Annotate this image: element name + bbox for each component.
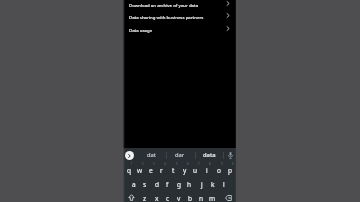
- staticText: 6: [187, 162, 189, 166]
- staticText: Data usage: [129, 27, 153, 33]
- button[interactable]: [125, 151, 134, 160]
- button[interactable]: r: [156, 163, 167, 177]
- button[interactable]: q: [123, 163, 134, 177]
- button[interactable]: [225, 195, 232, 201]
- button[interactable]: Data sharing with business partners: [123, 11, 236, 23]
- staticText: 9: [221, 162, 223, 166]
- staticText: o: [217, 166, 221, 175]
- staticText: i: [206, 166, 208, 175]
- staticText: m: [209, 194, 216, 202]
- staticText: q: [127, 166, 131, 175]
- staticText: 5: [176, 162, 178, 166]
- button[interactable]: p: [224, 163, 235, 177]
- button[interactable]: u: [190, 163, 201, 177]
- button[interactable]: e: [145, 163, 156, 177]
- button[interactable]: v: [173, 191, 184, 202]
- staticText: 3: [153, 162, 155, 166]
- button[interactable]: i: [201, 163, 212, 177]
- button[interactable]: y: [179, 163, 190, 177]
- staticText: y: [183, 166, 187, 175]
- staticText: 8: [209, 162, 211, 166]
- button[interactable]: h: [184, 177, 195, 191]
- staticText: s: [143, 180, 147, 189]
- button[interactable]: b: [184, 191, 195, 202]
- staticText: k: [211, 180, 215, 189]
- staticText: f: [166, 180, 169, 189]
- button[interactable]: l: [218, 177, 229, 191]
- button[interactable]: j: [196, 177, 207, 191]
- button[interactable]: k: [207, 177, 218, 191]
- staticText: 1: [131, 162, 133, 166]
- staticText: t: [172, 166, 175, 175]
- staticText: a: [132, 180, 136, 189]
- staticText: dat: [147, 151, 156, 159]
- staticText: x: [155, 194, 159, 202]
- staticText: g: [177, 180, 181, 189]
- button[interactable]: data: [198, 149, 220, 161]
- button[interactable]: o: [213, 163, 224, 177]
- staticText: r: [160, 166, 163, 175]
- staticText: j: [201, 180, 203, 189]
- staticText: d: [155, 180, 159, 189]
- staticText: l: [223, 180, 225, 189]
- staticText: Download an archive of your data: [129, 2, 199, 8]
- button[interactable]: [128, 194, 135, 201]
- staticText: u: [193, 166, 198, 175]
- button[interactable]: t: [168, 163, 179, 177]
- button[interactable]: s: [139, 177, 150, 191]
- button[interactable]: a: [128, 177, 139, 191]
- staticText: 0: [232, 162, 234, 166]
- staticText: v: [177, 194, 181, 202]
- staticText: 7: [198, 162, 200, 166]
- button[interactable]: d: [151, 177, 162, 191]
- staticText: 4: [164, 162, 166, 166]
- staticText: b: [188, 194, 192, 202]
- staticText: 2: [142, 162, 144, 166]
- staticText: c: [166, 194, 170, 202]
- button[interactable]: Download an archive of your data: [123, 0, 236, 11]
- staticText: data: [203, 151, 216, 159]
- staticText: e: [149, 166, 153, 175]
- button[interactable]: Data usage: [123, 24, 236, 36]
- staticText: n: [199, 194, 204, 202]
- button[interactable]: dar: [169, 149, 191, 161]
- button[interactable]: z: [139, 191, 150, 202]
- button[interactable]: f: [162, 177, 173, 191]
- staticText: dar: [175, 151, 185, 159]
- staticText: z: [143, 194, 147, 202]
- staticText: w: [137, 166, 143, 175]
- button[interactable]: g: [173, 177, 184, 191]
- staticText: h: [187, 180, 192, 189]
- staticText: Data sharing with business partners: [129, 14, 204, 20]
- button[interactable]: w: [134, 163, 145, 177]
- button[interactable]: [228, 152, 233, 159]
- button[interactable]: m: [207, 191, 218, 202]
- button[interactable]: dat: [140, 149, 162, 161]
- staticText: p: [228, 166, 232, 175]
- button[interactable]: x: [151, 191, 162, 202]
- button[interactable]: n: [196, 191, 207, 202]
- button[interactable]: c: [162, 191, 173, 202]
